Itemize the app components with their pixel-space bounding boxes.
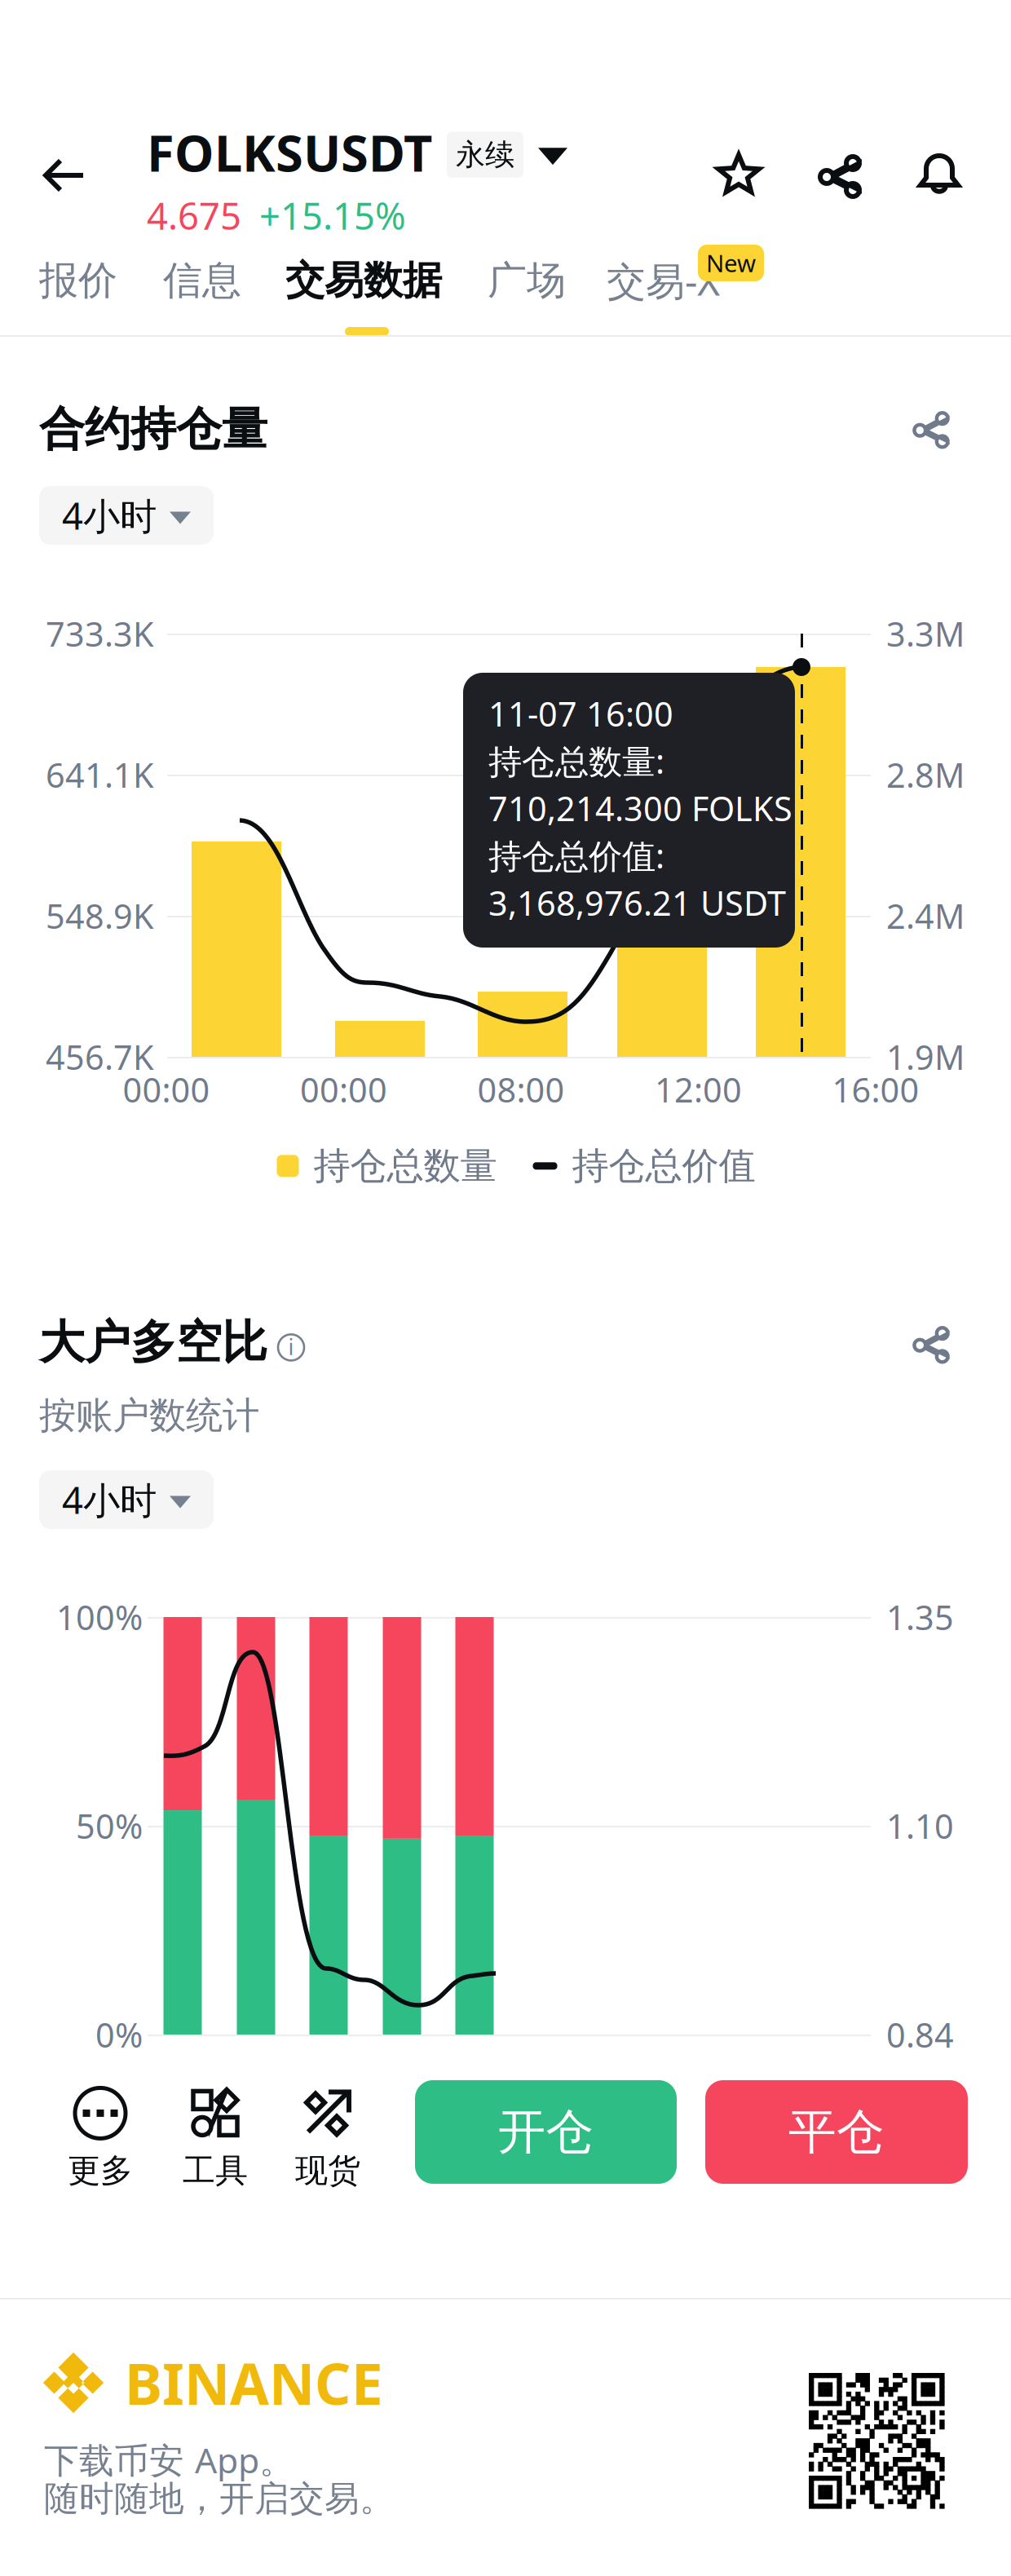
button[interactable]: Alerts <box>916 152 964 199</box>
staticText: 永续 <box>456 137 514 173</box>
staticText: 641.1K <box>46 752 154 797</box>
staticText: 16:00 <box>832 1067 919 1112</box>
button[interactable]: 4小时 <box>39 486 214 545</box>
staticText: 3.3M <box>886 611 965 656</box>
button[interactable]: 广场 <box>471 258 594 338</box>
staticText: 持仓总数量 <box>313 1143 497 1189</box>
staticText: 按账户数统计 <box>39 1393 259 1438</box>
staticText: 平仓 <box>788 2103 885 2161</box>
staticText: 1.10 <box>886 1803 954 1848</box>
staticText: 11-07 16:00 <box>488 691 673 736</box>
staticText: i <box>288 1332 294 1361</box>
staticText: 4.675 <box>147 191 241 240</box>
staticText: 548.9K <box>46 893 154 938</box>
button[interactable]: 现货 <box>271 2081 385 2195</box>
staticText: New <box>706 247 756 279</box>
button[interactable]: 报价 <box>23 258 145 338</box>
staticText: 更多 <box>68 2151 133 2191</box>
button[interactable]: Favorite <box>714 152 763 199</box>
staticText: 信息 <box>163 256 241 305</box>
staticText: 4小时 <box>62 491 157 540</box>
staticText: 3,168,976.21 USDT <box>488 880 786 925</box>
staticText: 现货 <box>295 2151 360 2191</box>
staticText: 下载币安 App。 <box>44 2437 294 2483</box>
button[interactable]: Back <box>20 130 109 220</box>
staticText: 08:00 <box>477 1067 565 1112</box>
staticText: 交易-X <box>607 255 720 306</box>
button[interactable]: 开仓 <box>415 2080 677 2184</box>
staticText: 持仓总价值: <box>488 833 664 878</box>
button[interactable]: Share <box>817 152 863 198</box>
staticText: 1.9M <box>886 1034 965 1079</box>
staticText: BINANCE <box>125 2345 383 2420</box>
staticText: 持仓总数量: <box>488 738 664 783</box>
staticText: 随时随地，开启交易。 <box>44 2477 395 2520</box>
button[interactable]: 交易数据 <box>269 258 473 338</box>
staticText: 100% <box>56 1595 143 1639</box>
button[interactable]: 信息 <box>147 258 269 338</box>
staticText: 4小时 <box>62 1475 157 1524</box>
staticText: 交易数据 <box>285 256 442 305</box>
staticText: 12:00 <box>655 1067 742 1112</box>
staticText: 大户多空比 <box>39 1315 267 1371</box>
staticText: 00:00 <box>123 1067 210 1112</box>
button[interactable]: 4小时 <box>39 1470 214 1529</box>
staticText: 报价 <box>39 256 117 305</box>
staticText: 持仓总价值 <box>572 1143 755 1189</box>
button[interactable]: 工具 <box>158 2081 272 2195</box>
staticText: 2.8M <box>886 752 965 797</box>
staticText: 456.7K <box>46 1034 154 1079</box>
button[interactable]: 平仓 <box>705 2080 968 2184</box>
staticText: 50% <box>76 1803 143 1848</box>
staticText: 合约持仓量 <box>39 401 267 457</box>
staticText: FOLKSUSDT <box>147 119 432 185</box>
button[interactable]: 更多 <box>43 2081 157 2195</box>
staticText: 0.84 <box>886 2012 954 2057</box>
button[interactable]: 交易-X <box>590 258 786 338</box>
staticText: 广场 <box>488 256 566 305</box>
staticText: 00:00 <box>300 1067 387 1112</box>
staticText: +15.15% <box>259 191 406 240</box>
staticText: 开仓 <box>498 2103 594 2161</box>
button[interactable]: Share open interest <box>912 409 951 448</box>
staticText: 2.4M <box>886 893 965 938</box>
staticText: 1.35 <box>886 1595 954 1639</box>
staticText: 工具 <box>183 2151 248 2191</box>
staticText: 710,214.300 FOLKS <box>488 786 792 831</box>
staticText: 0% <box>95 2012 143 2057</box>
staticText: 733.3K <box>46 611 154 656</box>
button[interactable]: Share long short ratio <box>912 1324 951 1363</box>
